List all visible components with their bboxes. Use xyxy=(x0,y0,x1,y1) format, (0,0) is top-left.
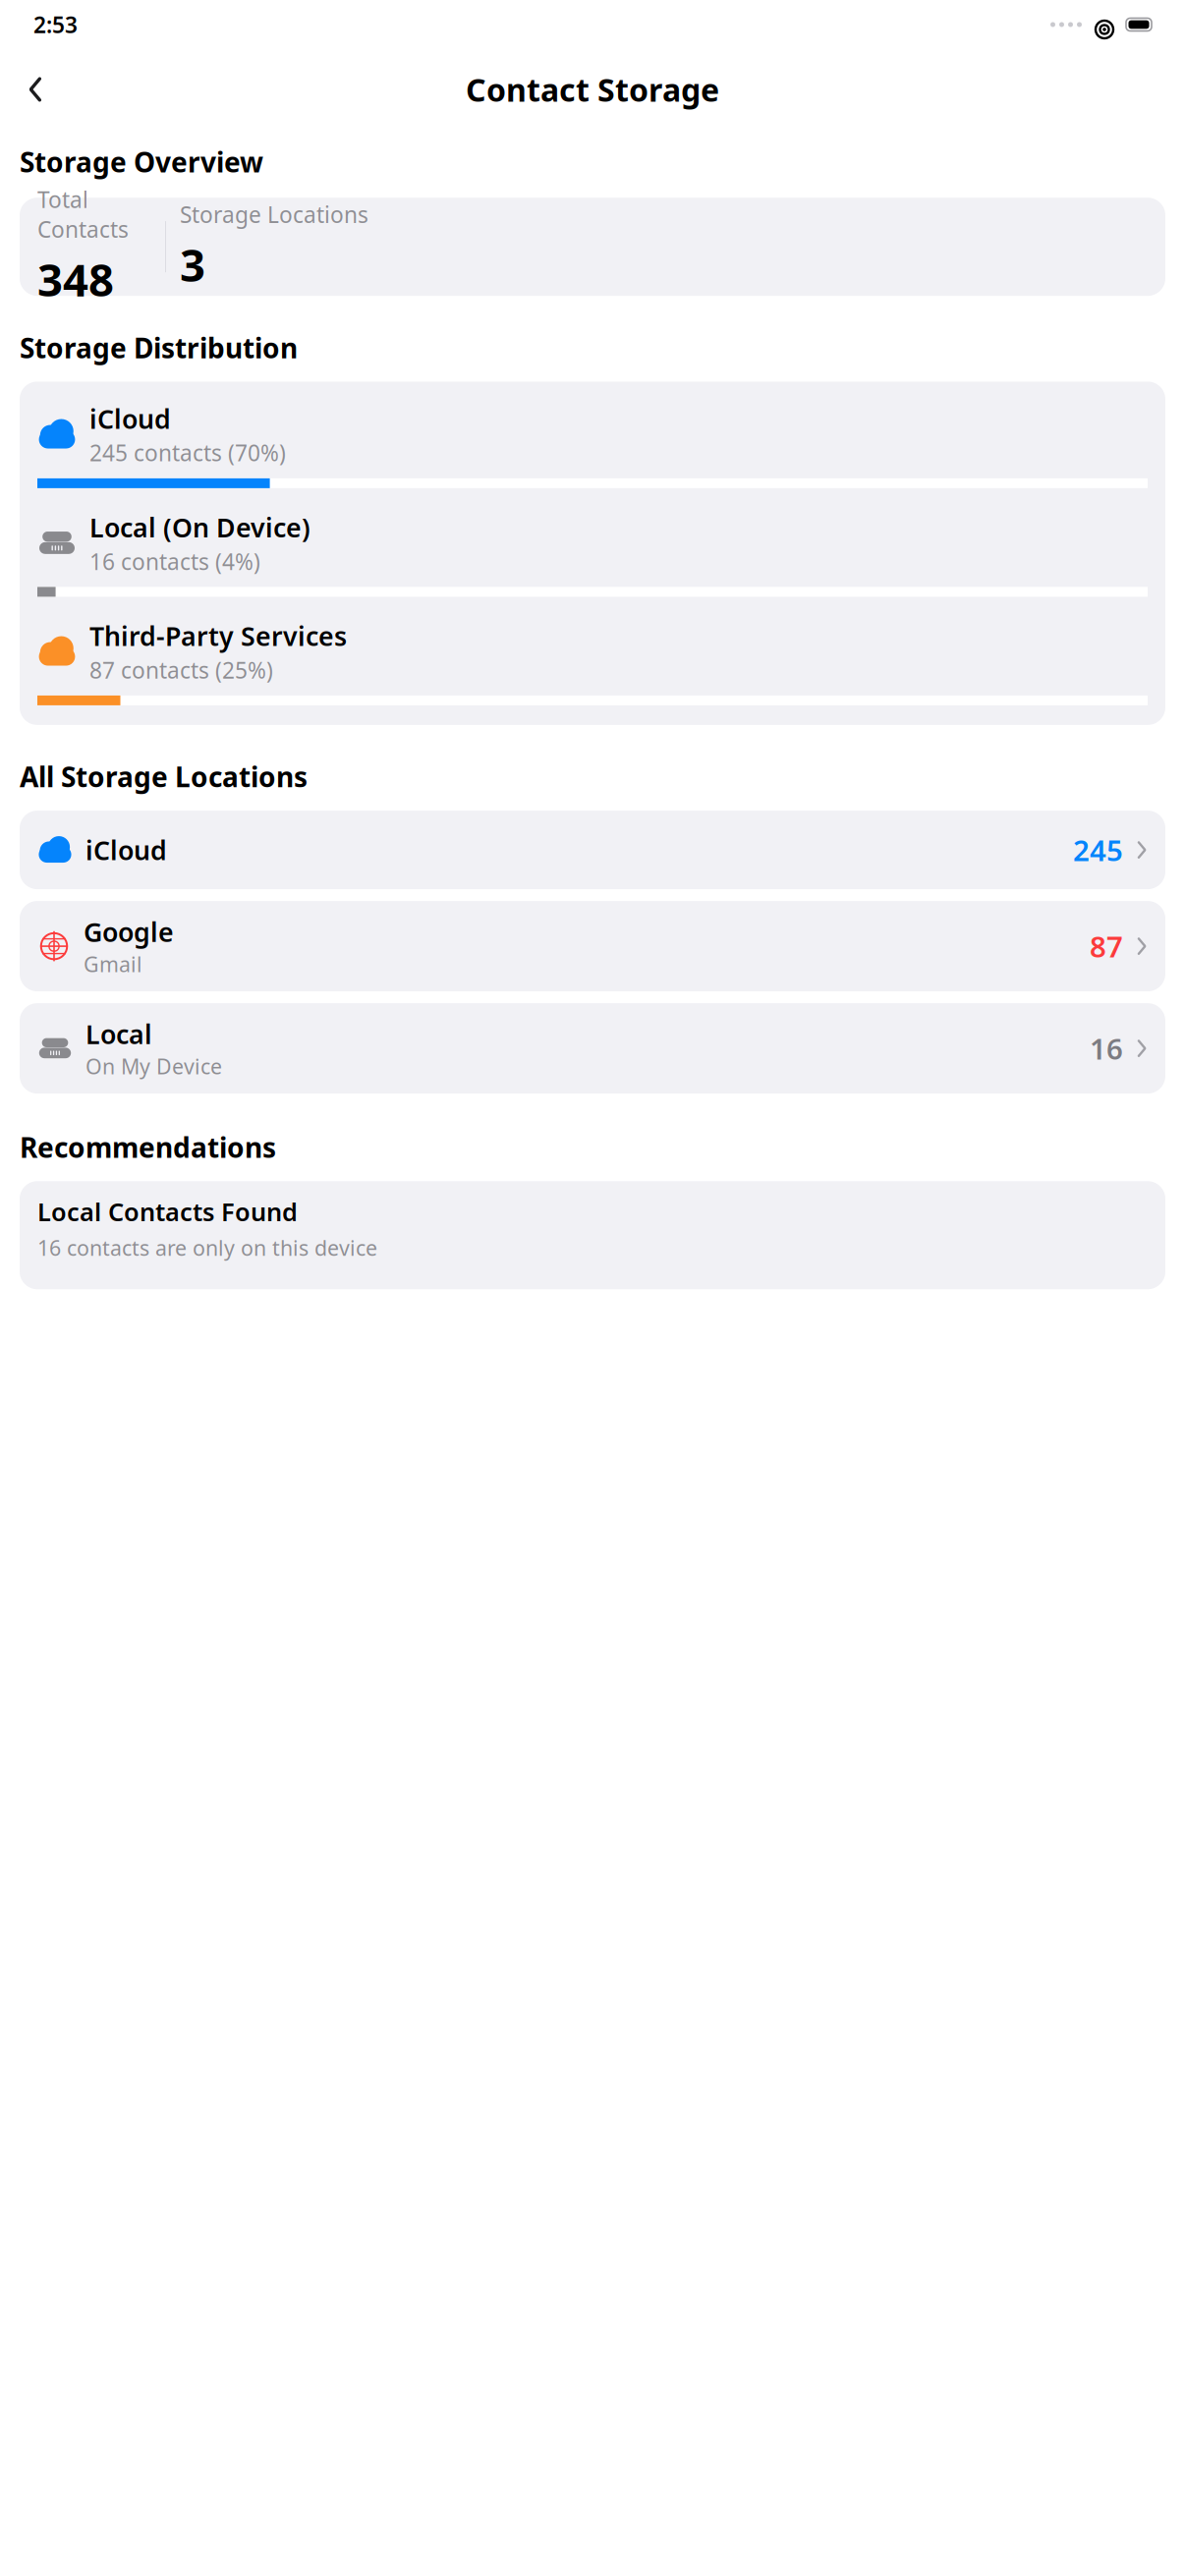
staticText: 16 xyxy=(1090,1029,1123,1068)
staticText: 3 xyxy=(180,235,205,294)
staticText: 87 xyxy=(1090,927,1123,965)
staticText: Google xyxy=(84,914,174,949)
staticText: 2:53 xyxy=(33,10,78,39)
staticText: All Storage Locations xyxy=(20,758,308,795)
staticText: On My Device xyxy=(85,1052,222,1080)
staticText: 87 contacts (25%) xyxy=(89,655,273,685)
staticText: 245 contacts (70%) xyxy=(89,438,286,468)
staticText: Storage Overview xyxy=(20,143,263,180)
button[interactable]: Back xyxy=(10,64,61,115)
staticText: Gmail xyxy=(84,950,142,978)
staticText: 245 xyxy=(1073,831,1123,869)
staticText: Local Contacts Found xyxy=(37,1195,298,1228)
staticText: iCloud xyxy=(85,833,167,867)
button[interactable]: iCloud xyxy=(20,811,1165,889)
staticText: Recommendations xyxy=(20,1129,276,1165)
staticText: iCloud xyxy=(89,401,171,436)
staticText: Storage Distribution xyxy=(20,329,298,366)
staticText: 16 contacts (4%) xyxy=(89,547,260,576)
staticText: 16 contacts are only on this device xyxy=(37,1234,377,1262)
button[interactable]: Local xyxy=(20,1003,1165,1094)
staticText: Storage Locations xyxy=(180,199,368,229)
button[interactable]: Google xyxy=(20,901,1165,991)
staticText: 348 xyxy=(37,250,114,309)
staticText: Total Contacts xyxy=(37,185,129,244)
staticText: Local xyxy=(85,1017,152,1051)
staticText: Local (On Device) xyxy=(89,510,310,545)
staticText: Contact Storage xyxy=(466,69,719,110)
staticText: Third-Party Services xyxy=(89,618,347,653)
